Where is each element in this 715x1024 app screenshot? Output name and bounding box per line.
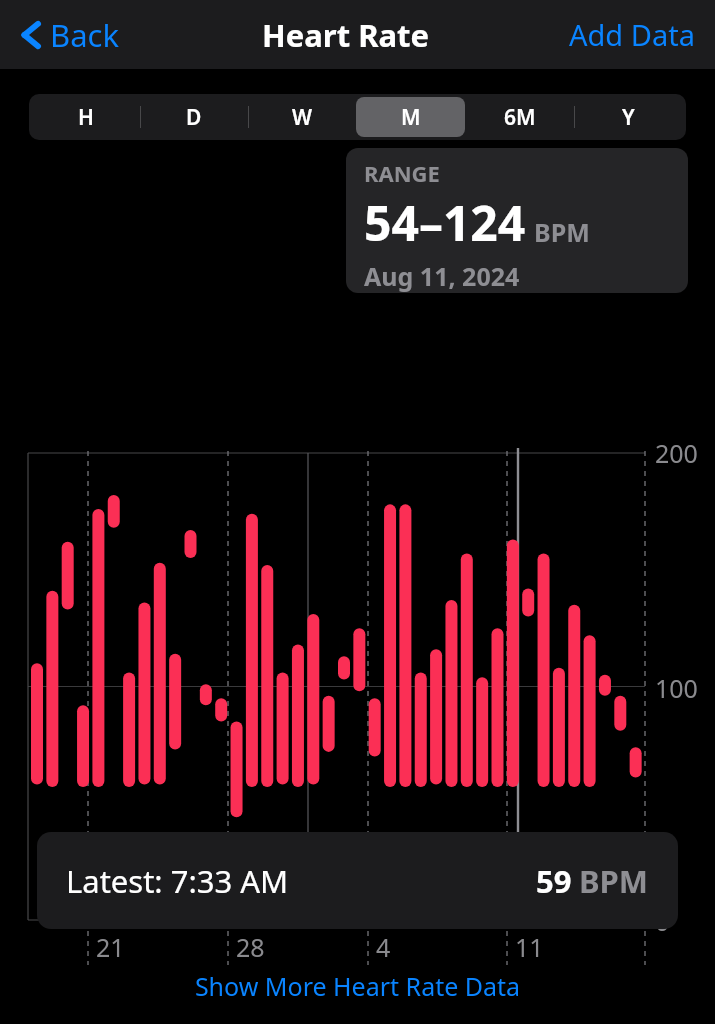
staticText: Back xyxy=(50,14,119,56)
staticText: H xyxy=(78,103,94,132)
button[interactable]: Add Data xyxy=(569,15,695,54)
staticText: 4 xyxy=(376,930,391,964)
staticText: Aug 11, 2024 xyxy=(364,259,520,293)
staticText: 11 xyxy=(515,930,544,964)
button[interactable]: Y xyxy=(574,97,683,137)
staticText: BPM xyxy=(534,215,590,249)
staticText: 100 xyxy=(655,671,698,705)
button[interactable]: Back xyxy=(16,14,123,56)
button[interactable]: D xyxy=(140,97,248,137)
staticText: Latest: 7:33 AM xyxy=(66,860,289,902)
staticText: Y xyxy=(622,103,635,132)
button[interactable]: H xyxy=(32,97,140,137)
button[interactable]: M xyxy=(356,97,465,137)
staticText: 200 xyxy=(655,436,698,470)
staticText: 0 xyxy=(655,904,670,938)
staticText: 21 xyxy=(96,930,125,964)
staticText: W xyxy=(292,103,313,132)
staticText: 6M xyxy=(504,103,536,132)
button[interactable]: Latest: 7:33 AM xyxy=(37,832,678,929)
staticText: D xyxy=(186,103,202,132)
staticText: Heart Rate xyxy=(262,14,430,56)
staticText: M xyxy=(401,103,421,132)
staticText: RANGE xyxy=(364,158,440,188)
button[interactable]: Show More Heart Rate Data xyxy=(0,969,715,1003)
staticText: 28 xyxy=(236,930,265,964)
button[interactable]: 6M xyxy=(465,97,574,137)
staticText: 54–124 xyxy=(364,190,526,255)
staticText: BPM xyxy=(579,860,649,902)
button[interactable]: W xyxy=(248,97,356,137)
staticText: 59 xyxy=(536,860,572,902)
